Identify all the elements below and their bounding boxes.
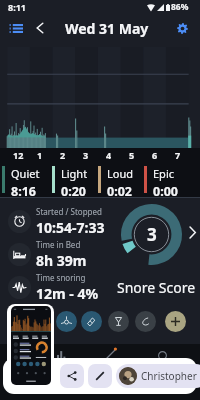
button[interactable]: Medicine tag: [81, 311, 102, 332]
staticText: Wed 31 May: [65, 19, 149, 37]
staticText: 7: [175, 149, 181, 161]
button[interactable]: Time snoring: [0, 271, 115, 303]
staticText: Epic: [153, 166, 174, 181]
staticText: 0:02: [107, 183, 132, 200]
staticText: 6: [152, 149, 158, 161]
staticText: Started / Stopped: [36, 206, 102, 217]
button[interactable]: Started / Stopped: [0, 205, 115, 237]
button[interactable]: Screenshot preview: [7, 304, 54, 392]
staticText: 1: [37, 149, 43, 161]
staticText: 3: [83, 149, 89, 161]
button[interactable]: Add tag: [165, 311, 186, 332]
button[interactable]: Epic: [144, 166, 190, 200]
staticText: Light: [61, 166, 88, 181]
staticText: Loud: [107, 166, 133, 181]
button[interactable]: Quiet: [2, 166, 48, 200]
staticText: 8h 39m: [36, 251, 87, 270]
button[interactable]: Loud: [98, 166, 144, 200]
button[interactable]: Edit: [88, 364, 112, 388]
staticText: 5: [129, 149, 135, 161]
staticText: Christopher: [141, 369, 197, 383]
staticText: 8:11: [8, 1, 26, 13]
button[interactable]: Alcohol tag: [108, 311, 129, 332]
button[interactable]: Trends: [100, 345, 120, 365]
button[interactable]: Stress tag: [56, 311, 77, 332]
staticText: 86%: [171, 1, 189, 13]
button[interactable]: Time in Bed: [0, 238, 115, 270]
staticText: Time in Bed: [36, 239, 81, 250]
staticText: 0:00: [153, 183, 178, 200]
staticText: Snore Score: [117, 278, 196, 297]
button[interactable]: Menu: [5, 17, 27, 39]
staticText: 10:54-7:33: [36, 218, 105, 237]
staticText: Time snoring: [36, 272, 86, 283]
button[interactable]: Profile: [152, 345, 172, 365]
staticText: 4: [106, 149, 112, 161]
staticText: 8:16: [11, 183, 36, 200]
staticText: Quiet: [11, 166, 40, 181]
button[interactable]: Settings: [171, 17, 193, 39]
button[interactable]: Light: [52, 166, 98, 200]
button[interactable]: Share: [60, 364, 84, 388]
staticText: 12: [13, 149, 24, 161]
button[interactable]: Nose tag: [135, 311, 156, 332]
button[interactable]: Sounds: [52, 345, 72, 365]
button[interactable]: Back: [29, 17, 50, 38]
button[interactable]: Snore score details: [186, 226, 198, 238]
staticText: 12m - 4%: [36, 284, 99, 303]
staticText: 0:20: [61, 183, 86, 200]
staticText: 2: [60, 149, 66, 161]
staticText: 3: [147, 223, 157, 246]
button[interactable]: Christopher: [116, 364, 200, 388]
